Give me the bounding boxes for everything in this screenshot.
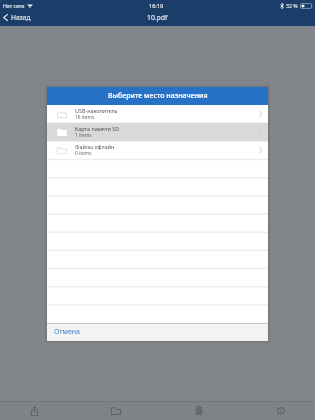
staticText: Файлы офлайн (75, 143, 115, 150)
staticText: 1 items (75, 132, 92, 139)
button[interactable]: Назад (0, 11, 37, 24)
staticText: 16 items (75, 114, 95, 121)
staticText: 0 items (75, 150, 92, 157)
button[interactable]: Файлы офлайн (47, 141, 268, 159)
staticText: 10.pdf (147, 13, 168, 22)
button[interactable]: Карта памяти SD (47, 123, 268, 141)
staticText: Выберите место назначения (108, 91, 208, 101)
staticText: 32 % (286, 2, 298, 9)
staticText: Нет сети (3, 2, 25, 9)
button[interactable]: Share (21, 401, 47, 420)
button[interactable]: Delete (186, 401, 212, 420)
staticText: Отмена (54, 327, 81, 337)
staticText: Карта памяти SD (75, 125, 120, 132)
staticText: USB-накопитель (75, 107, 118, 114)
button[interactable]: Info (268, 401, 294, 420)
button[interactable]: USB-накопитель (47, 105, 268, 123)
button[interactable]: Move to folder (103, 401, 129, 420)
staticText: Назад (11, 13, 31, 22)
staticText: 16:19 (149, 2, 164, 10)
button[interactable]: Отмена (47, 323, 88, 341)
